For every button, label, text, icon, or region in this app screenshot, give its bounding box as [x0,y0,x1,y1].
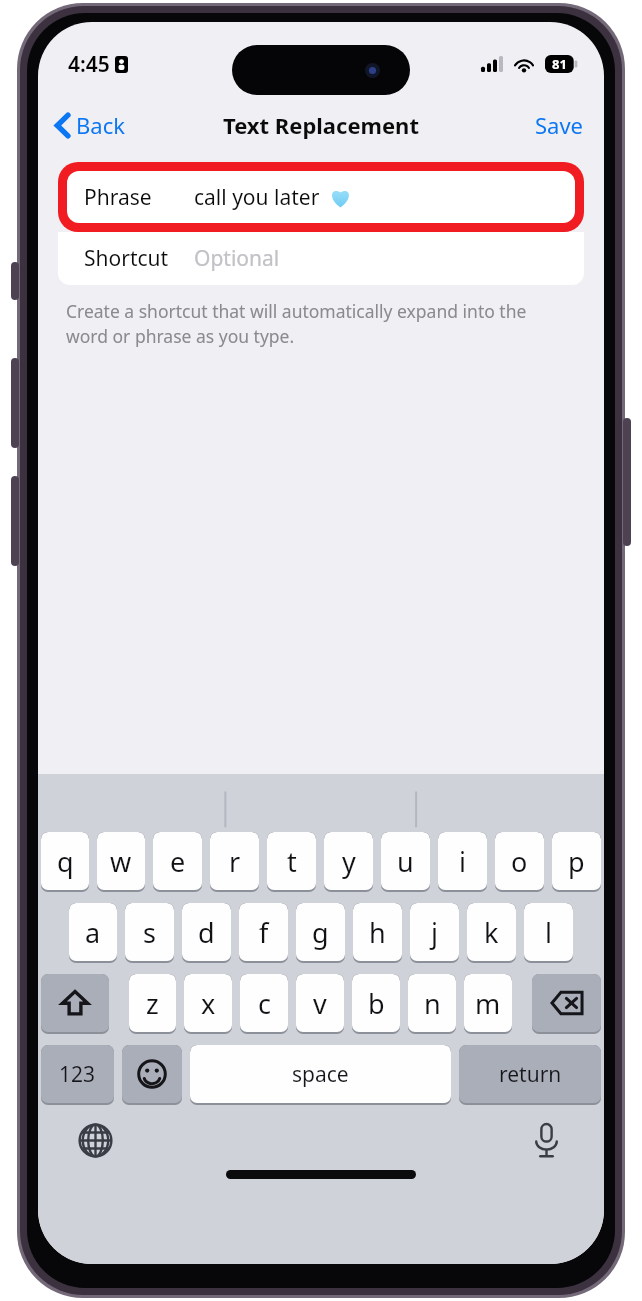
staticText: c [258,985,271,1022]
button[interactable]: v [296,974,344,1034]
staticText: 123 [59,1060,96,1089]
button[interactable]: Shift [41,974,109,1034]
button[interactable]: p [552,832,601,892]
button[interactable]: j [410,903,459,963]
staticText: Shortcut [84,244,194,273]
staticText: 81 [552,55,567,73]
button[interactable]: d [182,903,231,963]
button[interactable]: Change keyboard [72,1117,119,1164]
staticText: v [313,985,327,1022]
staticText: i [459,843,466,880]
staticText: l [545,914,552,951]
button[interactable]: 123 [41,1045,114,1105]
staticText: j [431,914,438,951]
button[interactable]: f [239,903,288,963]
staticText: call you later [194,183,320,212]
button[interactable]: h [353,903,402,963]
button[interactable]: w [97,832,145,892]
button[interactable]: l [524,903,573,963]
staticText: k [484,914,499,951]
button[interactable]: Save [529,105,590,145]
staticText: r [229,843,241,880]
button[interactable]: Backspace [532,974,601,1034]
button[interactable]: Emoji [122,1045,182,1105]
button[interactable]: g [296,903,345,963]
staticText: return [499,1060,562,1089]
staticText: Phrase [84,183,194,212]
staticText: z [146,985,159,1022]
button[interactable]: Shortcut [58,232,584,285]
button[interactable]: Back [50,105,131,145]
staticText: q [57,843,74,880]
staticText: y [342,843,356,880]
button[interactable]: b [352,974,400,1034]
staticText: Text Replacement [223,110,419,140]
staticText: e [170,843,186,880]
staticText: s [143,914,156,951]
staticText: d [198,914,215,951]
staticText: p [568,843,585,880]
button[interactable]: return [459,1045,601,1105]
button[interactable]: y [324,832,373,892]
staticText: a [85,914,101,951]
button[interactable]: z [129,974,176,1034]
staticText: u [397,843,414,880]
button[interactable]: m [464,974,512,1034]
staticText: b [368,985,385,1022]
button[interactable]: space [190,1045,451,1105]
staticText: m [475,985,501,1022]
staticText: x [201,985,216,1022]
staticText: Optional [194,244,280,273]
staticText: n [424,985,441,1022]
staticText: Back [76,110,125,140]
button[interactable]: n [408,974,456,1034]
button[interactable]: o [495,832,544,892]
staticText: h [369,914,386,951]
button[interactable]: e [153,832,202,892]
staticText: 4:45 [68,50,110,79]
staticText: g [312,914,329,951]
button[interactable]: q [41,832,89,892]
button[interactable]: a [69,903,117,963]
staticText: o [511,843,528,880]
button[interactable]: t [267,832,316,892]
staticText: w [110,843,132,880]
button[interactable]: c [240,974,288,1034]
staticText: space [292,1060,349,1089]
button[interactable]: i [438,832,487,892]
staticText: t [287,843,297,880]
staticText: Create a shortcut that will automaticall… [66,299,562,348]
button[interactable]: k [467,903,516,963]
button[interactable]: Dictation [527,1117,566,1164]
button[interactable]: s [125,903,174,963]
button[interactable]: x [184,974,232,1034]
button[interactable]: Phrase [67,171,575,223]
button[interactable]: u [381,832,430,892]
staticText: f [259,914,269,951]
button[interactable]: r [210,832,259,892]
staticText: Save [535,110,584,140]
